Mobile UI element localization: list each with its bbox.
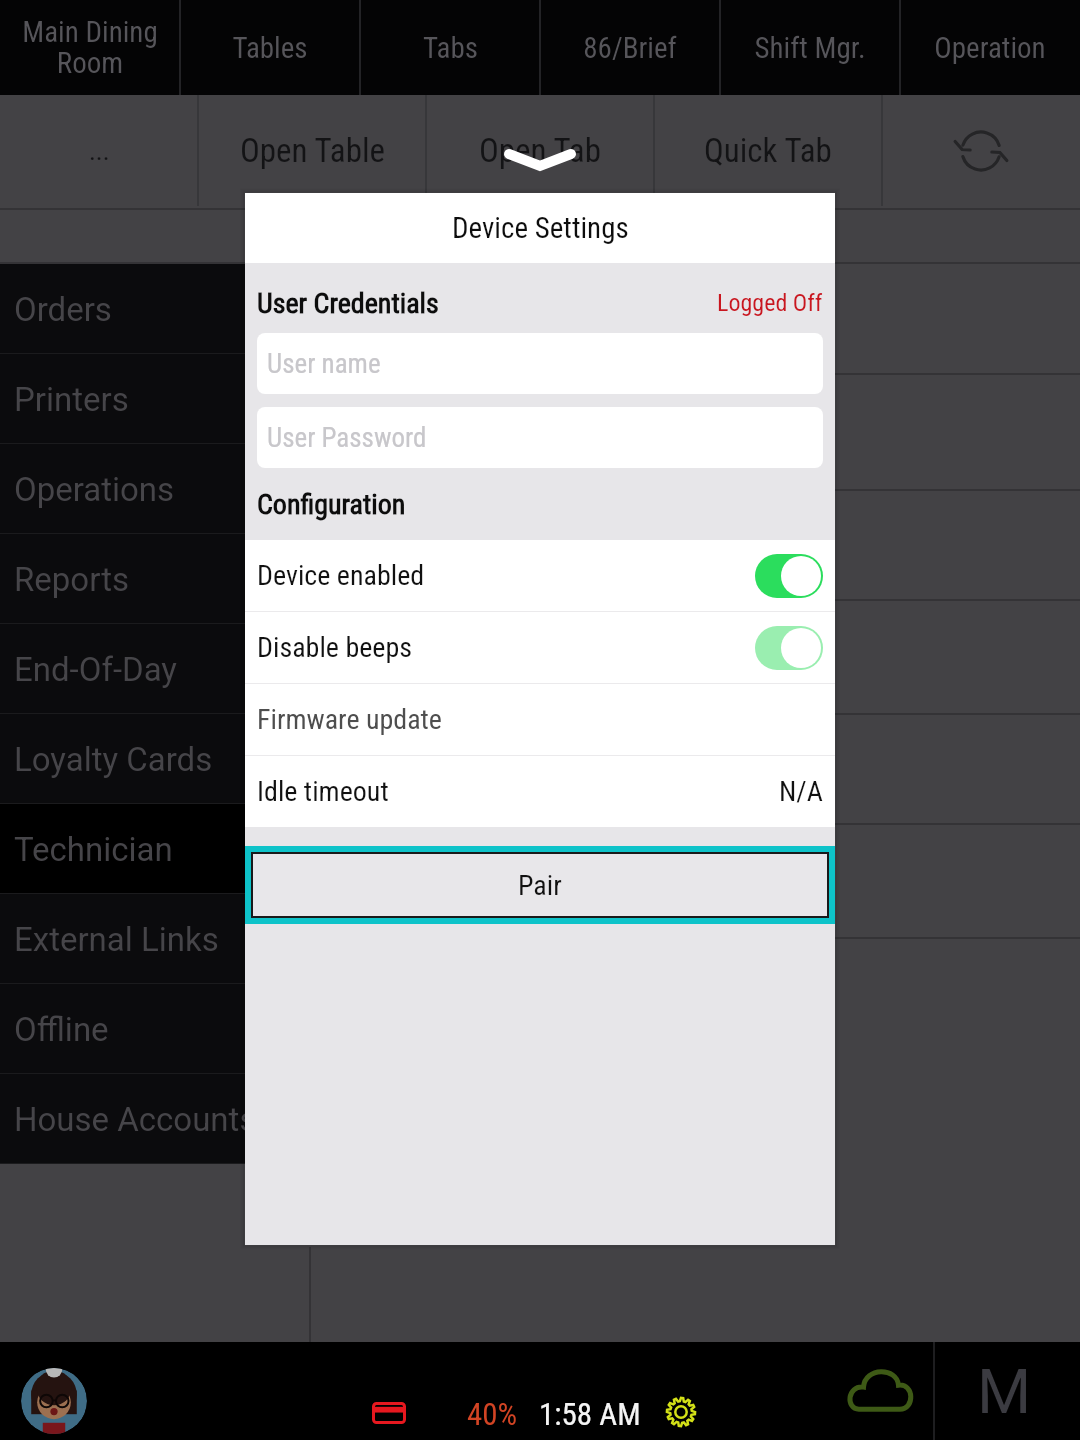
staticText: 40% [467,1396,518,1432]
button[interactable]: User profile [21,1368,87,1434]
button[interactable]: User Password [257,407,823,468]
button[interactable]: Device enabled [257,540,823,611]
staticText: Tables [232,31,308,65]
button[interactable]: 86/Brief [540,0,720,95]
staticText: 86/Brief [583,31,677,65]
button[interactable]: Offline [0,984,246,1074]
staticText: Technician [14,830,173,869]
button[interactable]: Operation [900,0,1080,95]
button[interactable]: Cloud sync [847,1366,913,1414]
button[interactable]: Disable beeps [257,612,823,683]
button[interactable]: Toggle [755,626,823,670]
staticText: Loyalty Cards [14,740,213,779]
button[interactable]: Reports [0,534,246,624]
staticText: Operation [934,31,1046,65]
staticText: M [977,1355,1032,1428]
button[interactable]: Shift Mgr. [720,0,900,95]
staticText: Reports [14,560,130,599]
staticText: Logged Off [717,289,823,317]
staticText: User name [267,348,381,380]
button[interactable]: Settings [666,1397,696,1427]
button[interactable]: Printers [0,354,246,444]
staticText: End-Of-Day [14,650,177,689]
button[interactable]: Tabs [360,0,540,95]
staticText: Pair [518,869,562,902]
button[interactable]: M [931,1342,1077,1440]
staticText: Quick Tab [704,131,832,170]
staticText: ... [89,136,110,166]
staticText: Configuration [257,488,406,521]
button[interactable]: Open Tab [426,95,654,206]
staticText: External Links [14,920,219,959]
staticText: Operations [14,470,175,509]
button[interactable]: Main Dining Room [0,0,180,95]
button[interactable]: Refresh [882,95,1080,206]
button[interactable]: Operations [0,444,246,534]
staticText: Tabs [423,31,478,65]
staticText: User Credentials [257,287,439,320]
staticText: Printers [14,380,129,419]
staticText: Open Table [240,131,385,170]
staticText: Open Tab [479,131,601,170]
staticText: Main Dining Room [22,15,158,80]
staticText: Device Settings [452,211,629,245]
button[interactable]: Firmware update [257,684,823,755]
staticText: Device enabled [257,559,425,592]
staticText: Orders [14,290,112,329]
staticText: Disable beeps [257,631,413,664]
staticText: House Accounts [14,1100,246,1139]
button[interactable]: Orders [0,264,246,354]
button[interactable]: Technician [0,804,246,894]
staticText: Offline [14,1010,109,1049]
button[interactable]: User name [257,333,823,394]
button[interactable]: Tables [180,0,360,95]
staticText: 1:58 AM [539,1396,641,1432]
button[interactable]: Pair [251,852,829,918]
button[interactable]: External Links [0,894,246,984]
button[interactable]: Toggle [755,554,823,598]
staticText: N/A [779,775,823,808]
button[interactable]: Loyalty Cards [0,714,246,804]
button[interactable]: House Accounts [0,1074,246,1164]
button[interactable]: End-Of-Day [0,624,246,714]
staticText: Idle timeout [257,775,389,808]
button[interactable]: Open Table [198,95,426,206]
staticText: User Password [267,422,427,454]
button[interactable]: Card reader [372,1402,406,1424]
button[interactable]: Quick Tab [654,95,882,206]
button[interactable]: Idle timeout [257,756,823,827]
staticText: Firmware update [257,703,442,736]
staticText: Shift Mgr. [754,31,866,65]
